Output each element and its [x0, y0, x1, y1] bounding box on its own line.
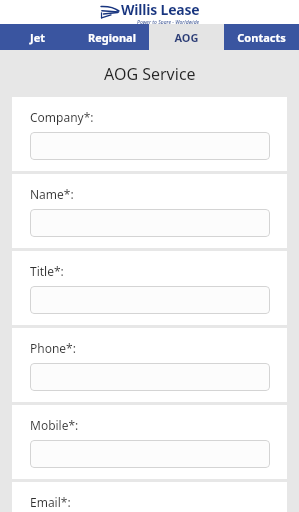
staticText: AOG — [174, 30, 199, 45]
button[interactable]: Name*: — [30, 209, 270, 237]
staticText: Phone*: — [30, 340, 76, 356]
button[interactable]: Contacts — [224, 24, 299, 50]
staticText: Company*: — [30, 109, 94, 125]
other: Willis Lease logo — [100, 5, 119, 20]
button[interactable]: Mobile*: — [30, 440, 270, 468]
button[interactable]: Email*: — [12, 482, 287, 512]
button[interactable]: Company*: — [12, 97, 287, 171]
button[interactable]: Mobile*: — [12, 405, 287, 479]
button[interactable]: Jet — [0, 24, 74, 50]
staticText: Jet — [30, 30, 45, 45]
staticText: Contacts — [237, 30, 286, 45]
staticText: Regional — [88, 30, 136, 45]
staticText: Email*: — [30, 494, 71, 510]
staticText: Title*: — [30, 263, 64, 279]
button[interactable]: Company*: — [30, 132, 270, 160]
staticText: Mobile*: — [30, 417, 79, 433]
staticText: Name*: — [30, 186, 74, 202]
button[interactable]: Phone*: — [12, 328, 287, 402]
staticText: AOG Service — [104, 63, 196, 85]
staticText: Willis Lease — [121, 0, 200, 19]
staticText: Power to Spare - Worldwide — [137, 19, 200, 24]
button[interactable]: Name*: — [12, 174, 287, 248]
button[interactable]: Regional — [74, 24, 149, 50]
button[interactable]: AOG — [149, 24, 224, 50]
button[interactable]: Phone*: — [30, 363, 270, 391]
button[interactable]: Title*: — [12, 251, 287, 325]
button[interactable]: Title*: — [30, 286, 270, 314]
